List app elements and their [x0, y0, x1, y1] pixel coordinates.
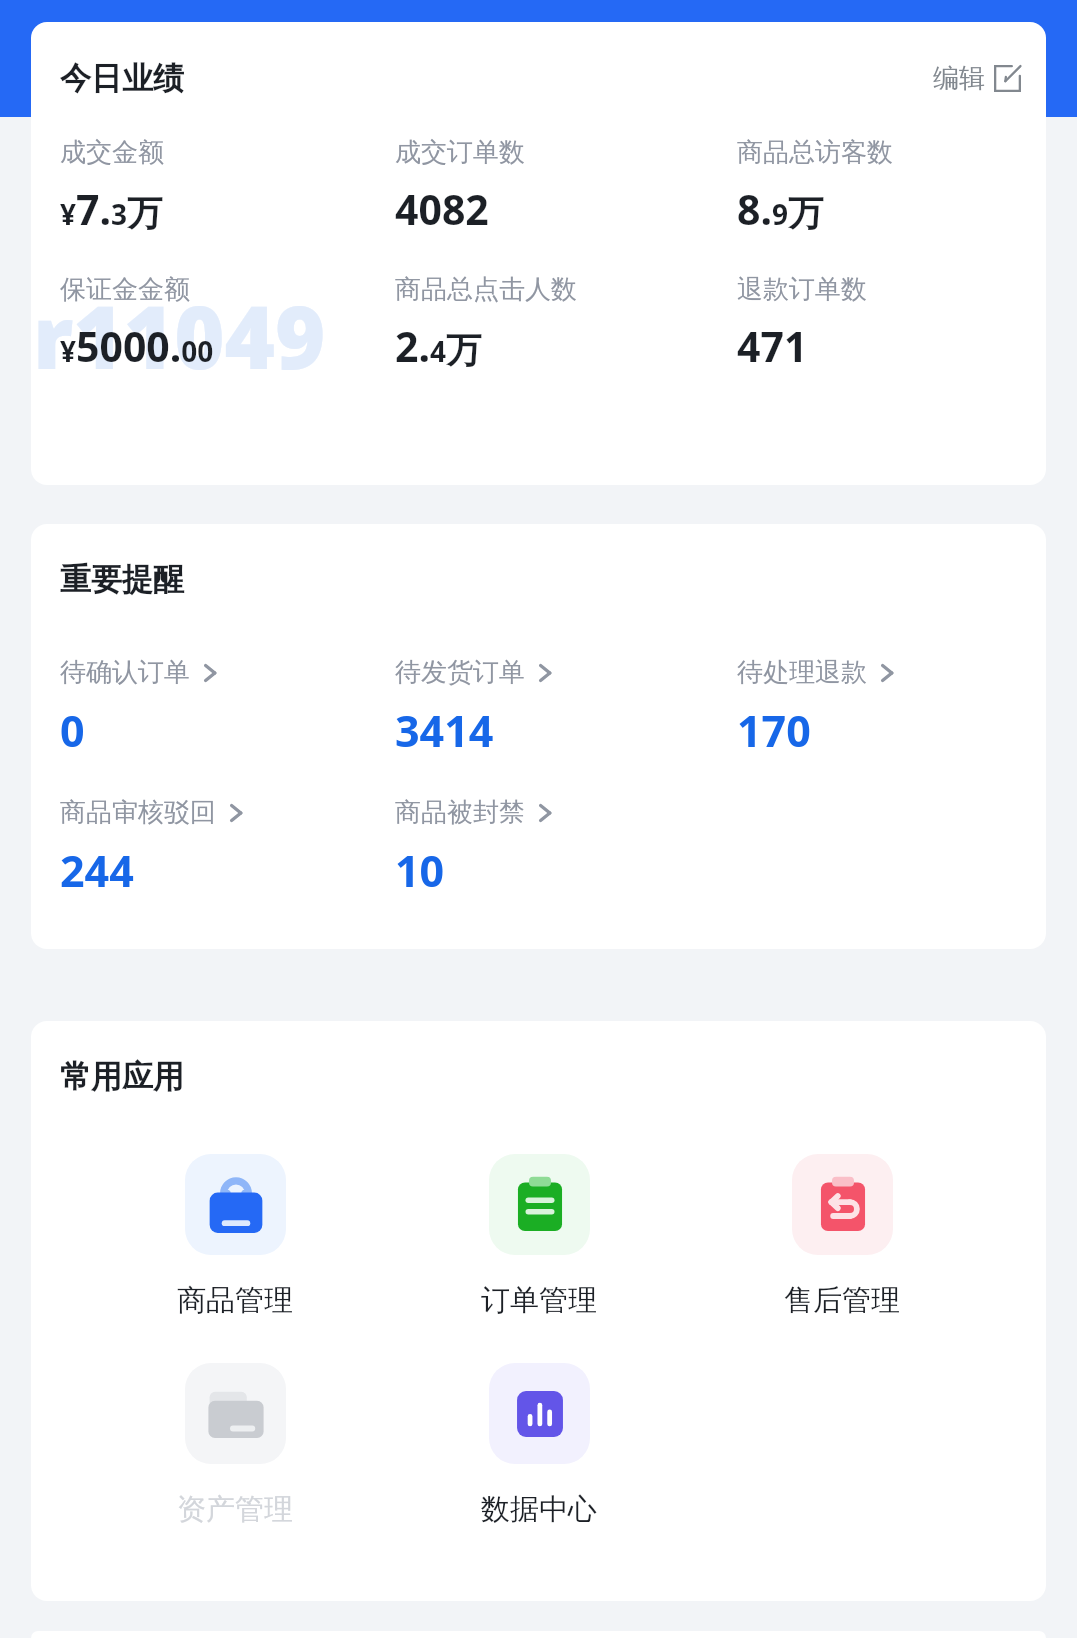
staticText: 商品总点击人数 — [395, 273, 577, 306]
staticText: 待发货订单 — [395, 656, 525, 689]
staticText: 保证金金额 — [60, 273, 190, 306]
staticText: 4082 — [395, 181, 489, 237]
staticText: 商品审核驳回 — [60, 796, 216, 829]
other: 编辑 — [994, 65, 1021, 92]
staticText: 资产管理 — [177, 1491, 293, 1528]
staticText: 订单管理 — [481, 1282, 597, 1319]
staticText: 商品总访客数 — [737, 136, 893, 169]
other: 售后管理 — [814, 1176, 872, 1234]
staticText: 10 — [395, 841, 445, 900]
staticText: r11049 — [33, 277, 326, 394]
staticText: 3414 — [395, 701, 494, 760]
staticText: 重要提醒 — [60, 560, 184, 599]
button[interactable]: 商品被封禁 — [395, 796, 708, 900]
other: 资产管理 — [206, 1384, 266, 1444]
other: 订单管理 — [511, 1176, 569, 1234]
staticText: 售后管理 — [784, 1282, 900, 1319]
staticText: 待处理退款 — [737, 656, 867, 689]
staticText: 0 — [60, 701, 85, 760]
staticText: 商品管理 — [177, 1282, 293, 1319]
staticText: 471 — [737, 318, 808, 374]
staticText: 170 — [737, 701, 811, 760]
staticText: 商品被封禁 — [395, 796, 525, 829]
staticText: 编辑 — [933, 62, 985, 95]
staticText: 今日业绩 — [60, 59, 184, 98]
staticText: ¥7.3万 — [60, 181, 163, 237]
button[interactable]: 数据中心 — [439, 1363, 639, 1528]
other: 商品管理 — [205, 1174, 267, 1236]
staticText: 成交金额 — [60, 136, 164, 169]
staticText: 8.9万 — [737, 181, 823, 237]
button[interactable]: 待处理退款 — [737, 656, 1046, 760]
staticText: 常用应用 — [60, 1057, 184, 1096]
button[interactable]: 编辑 — [933, 62, 1021, 95]
button[interactable]: 商品审核驳回 — [60, 796, 370, 900]
staticText: 成交订单数 — [395, 136, 525, 169]
button[interactable]: 售后管理 — [742, 1154, 942, 1319]
button[interactable]: 待确认订单 — [60, 656, 370, 760]
staticText: 数据中心 — [481, 1491, 597, 1528]
staticText: 244 — [60, 841, 134, 900]
other: 数据中心 — [512, 1386, 568, 1442]
button[interactable]: 资产管理 — [135, 1363, 335, 1528]
button[interactable]: 商品管理 — [135, 1154, 335, 1319]
staticText: 待确认订单 — [60, 656, 190, 689]
staticText: ¥5000.00 — [60, 318, 214, 374]
button[interactable]: 订单管理 — [439, 1154, 639, 1319]
staticText: 2.4万 — [395, 318, 481, 374]
staticText: 退款订单数 — [737, 273, 867, 306]
button[interactable]: 待发货订单 — [395, 656, 708, 760]
